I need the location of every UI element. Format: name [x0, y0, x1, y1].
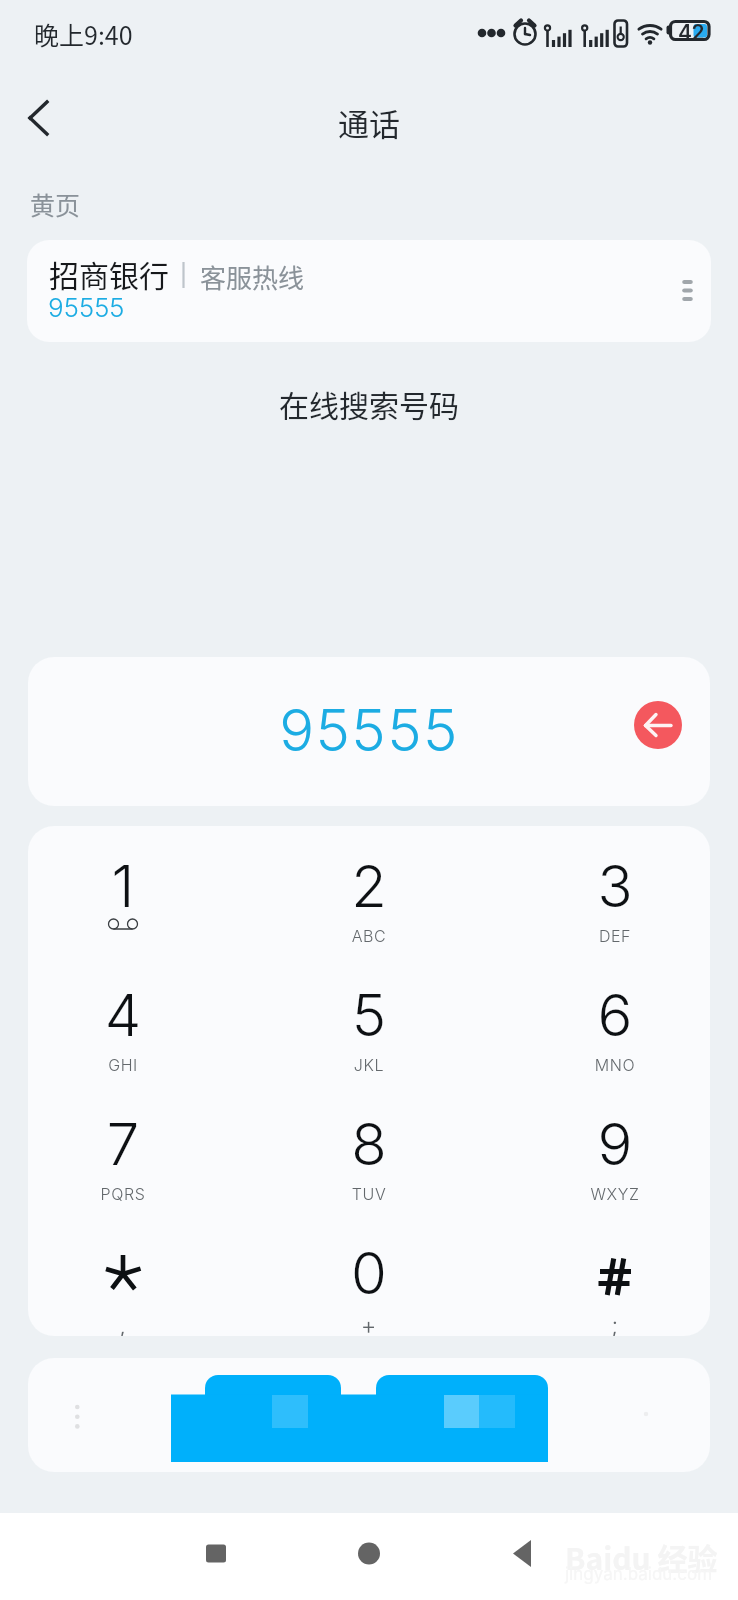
staticText: 42: [678, 20, 705, 45]
staticText: ;: [515, 1311, 710, 1336]
staticText: 0: [269, 1238, 469, 1308]
staticText: Baidu 经验: [565, 1535, 718, 1578]
staticText: WXYZ: [515, 1184, 710, 1203]
staticText: TUV: [269, 1184, 469, 1203]
button[interactable]: Recents: [156, 1513, 276, 1600]
button[interactable]: Backspace: [634, 701, 682, 749]
button[interactable]: 0: [269, 1238, 469, 1336]
staticText: ,: [28, 1311, 223, 1336]
button[interactable]: 7: [28, 1109, 223, 1234]
staticText: DEF: [515, 926, 710, 945]
button[interactable]: More options: [663, 267, 711, 315]
staticText: GHI: [28, 1055, 223, 1074]
staticText: 9: [515, 1109, 710, 1179]
button[interactable]: Back: [461, 1513, 581, 1600]
staticText: 2: [269, 851, 469, 921]
staticText: 95555: [48, 292, 125, 323]
button[interactable]: 9: [515, 1109, 710, 1234]
button[interactable]: ;: [515, 1238, 710, 1336]
staticText: 客服热线: [200, 258, 305, 296]
button[interactable]: 2: [269, 851, 469, 976]
staticText: +: [269, 1311, 469, 1336]
staticText: 6: [515, 980, 710, 1050]
staticText: 通话: [0, 100, 738, 145]
button[interactable]: 8: [269, 1109, 469, 1234]
staticText: 在线搜索号码: [0, 382, 738, 425]
staticText: 晚上9:40: [34, 16, 133, 52]
button[interactable]: Home: [309, 1513, 429, 1600]
staticText: 3: [515, 851, 710, 921]
button[interactable]: 4: [28, 980, 223, 1105]
button[interactable]: 招商银行: [27, 240, 711, 342]
button[interactable]: 1: [28, 851, 223, 976]
staticText: 95555: [28, 695, 710, 765]
staticText: 黄页: [30, 186, 81, 222]
staticText: 7: [28, 1109, 223, 1179]
button[interactable]: 3: [515, 851, 710, 976]
staticText: JKL: [269, 1055, 469, 1074]
staticText: MNO: [515, 1055, 710, 1074]
staticText: PQRS: [28, 1184, 223, 1203]
button[interactable]: 5: [269, 980, 469, 1105]
button[interactable]: 6: [515, 980, 710, 1105]
button[interactable]: [28, 1358, 710, 1472]
staticText: 招商银行: [49, 252, 169, 295]
staticText: 4: [28, 980, 223, 1050]
staticText: ABC: [269, 926, 469, 945]
button[interactable]: Back: [0, 74, 88, 162]
staticText: jingyan.baidu.com: [565, 1564, 713, 1585]
button[interactable]: ,: [28, 1238, 223, 1336]
staticText: 5: [269, 980, 469, 1050]
staticText: 1: [28, 851, 223, 921]
staticText: 8: [269, 1109, 469, 1179]
